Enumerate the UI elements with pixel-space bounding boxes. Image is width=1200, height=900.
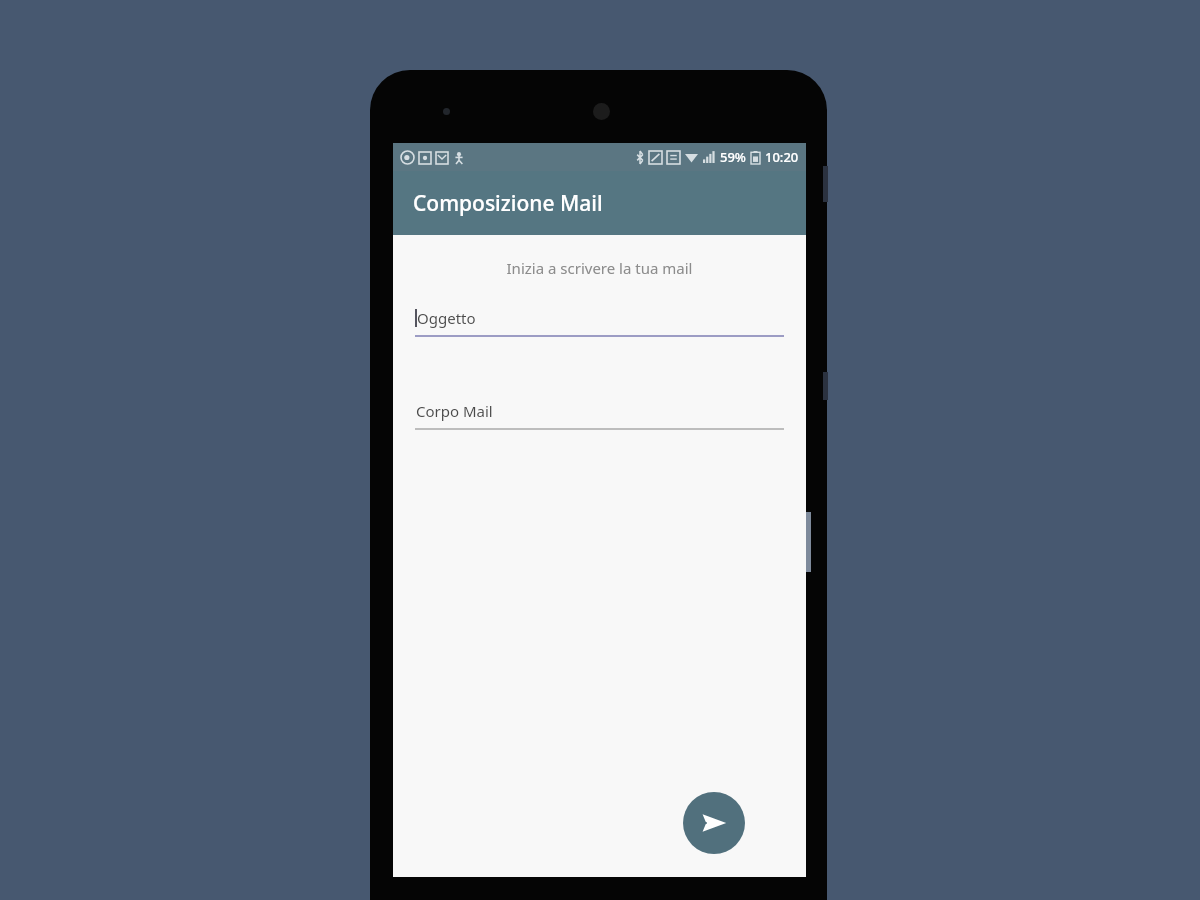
- staticText: 10:20: [765, 148, 799, 166]
- button[interactable]: Corpo Mail: [415, 401, 784, 430]
- staticText: 59%: [720, 148, 746, 166]
- staticText: Composizione Mail: [413, 189, 603, 218]
- button[interactable]: Composizione Mail: [393, 171, 806, 235]
- staticText: Inizia a scrivere la tua mail: [393, 258, 806, 278]
- staticText: Corpo Mail: [416, 401, 493, 421]
- button[interactable]: Oggetto: [415, 308, 784, 337]
- button[interactable]: Invia mail: [683, 792, 745, 854]
- staticText: Oggetto: [417, 308, 476, 328]
